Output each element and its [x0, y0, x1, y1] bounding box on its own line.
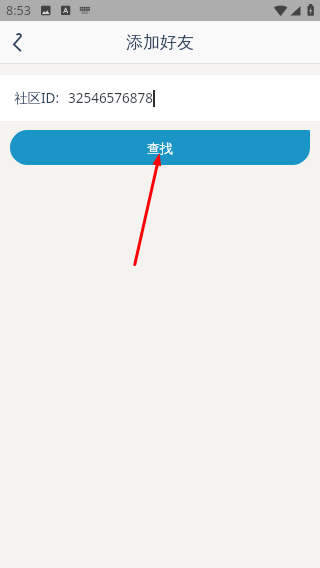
button[interactable]: 社区ID:: [0, 75, 320, 121]
staticText: 8:53: [6, 2, 31, 19]
staticText: 社区ID:: [14, 89, 60, 107]
staticText: 添加好友: [126, 32, 194, 53]
staticText: 32546576878: [68, 89, 153, 107]
staticText: 查找: [147, 140, 173, 156]
button[interactable]: Back: [0, 22, 40, 62]
button[interactable]: 查找: [10, 130, 310, 165]
